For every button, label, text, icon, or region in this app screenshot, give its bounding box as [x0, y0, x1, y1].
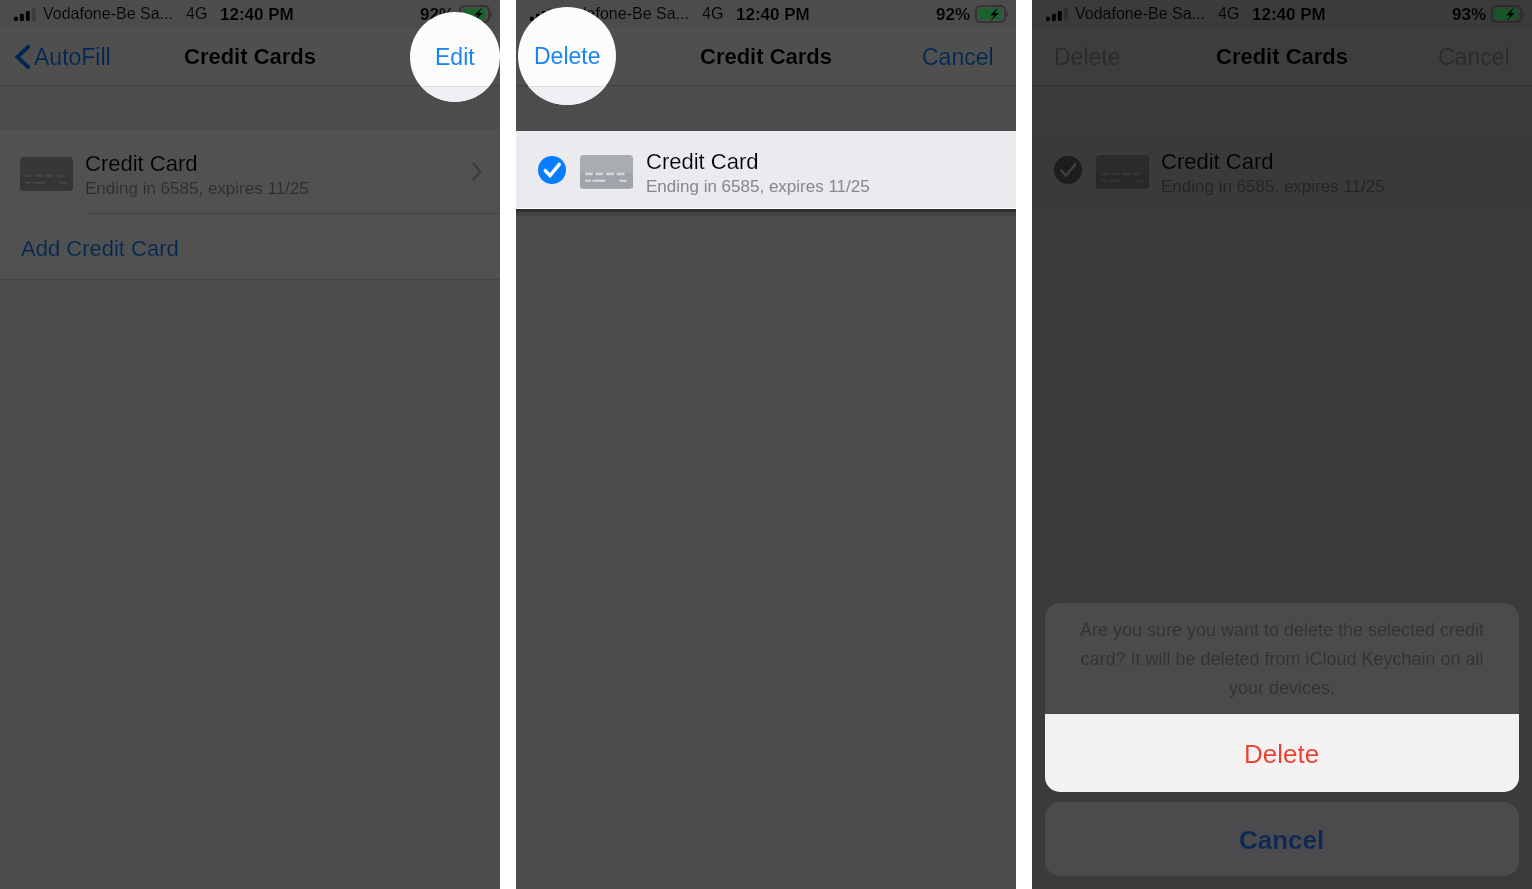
staticText: Credit Cards [700, 44, 833, 69]
button[interactable]: Credit Card [0, 130, 500, 213]
staticText: Vodafone-Be Sa... [43, 5, 173, 23]
other: Selected [1054, 156, 1082, 184]
button[interactable]: Edit [410, 12, 500, 102]
button[interactable]: Selected [516, 131, 1016, 208]
button[interactable]: Add Credit Card [0, 214, 500, 279]
button[interactable]: Cancel [1430, 36, 1518, 78]
staticText: Vodafone-Be Sa... [559, 5, 689, 23]
staticText: 92% [936, 5, 971, 24]
staticText: 4G [702, 5, 724, 23]
staticText: Ending in 6585, expires 11/25 [85, 179, 309, 198]
staticText: Credit Cards [184, 44, 317, 69]
staticText: Credit Card [85, 151, 198, 176]
button[interactable]: Back to AutoFill [12, 36, 114, 78]
staticText: Add Credit Card [21, 236, 179, 261]
staticText: 93% [1452, 5, 1487, 24]
staticText: Edit [436, 44, 476, 70]
staticText: Credit Card [646, 149, 759, 174]
staticText: Cancel [1239, 825, 1325, 854]
staticText: Delete [1244, 739, 1320, 768]
staticText: 12:40 PM [736, 5, 810, 24]
button[interactable]: Delete [530, 36, 613, 78]
staticText: Edit [435, 44, 475, 70]
staticText: 92% [420, 5, 455, 24]
button[interactable]: Delete [1046, 36, 1129, 78]
staticText: Delete [1054, 44, 1121, 70]
other: Selected [538, 156, 566, 184]
staticText: 12:40 PM [1252, 5, 1326, 24]
staticText: Vodafone-Be Sa... [1075, 5, 1205, 23]
staticText: Credit Cards [1216, 44, 1349, 69]
staticText: Credit Card [1161, 149, 1274, 174]
button[interactable]: Delete [518, 7, 616, 105]
staticText: Cancel [922, 44, 994, 70]
staticText: AutoFill [34, 44, 111, 70]
button[interactable]: Delete [1045, 714, 1519, 792]
button[interactable]: Cancel [914, 36, 1002, 78]
staticText: 12:40 PM [220, 5, 294, 24]
button[interactable]: Selected [1032, 131, 1532, 208]
button[interactable]: Edit [428, 36, 484, 78]
staticText: 4G [186, 5, 208, 23]
staticText: Delete [538, 44, 605, 70]
staticText: Are you sure you want to delete the sele… [1066, 620, 1498, 698]
staticText: Delete [534, 43, 601, 69]
staticText: Ending in 6585, expires 11/25 [1161, 177, 1385, 196]
staticText: 4G [1218, 5, 1240, 23]
staticText: Ending in 6585, expires 11/25 [646, 177, 870, 196]
staticText: Cancel [1438, 44, 1510, 70]
button[interactable]: Cancel [1045, 802, 1519, 876]
